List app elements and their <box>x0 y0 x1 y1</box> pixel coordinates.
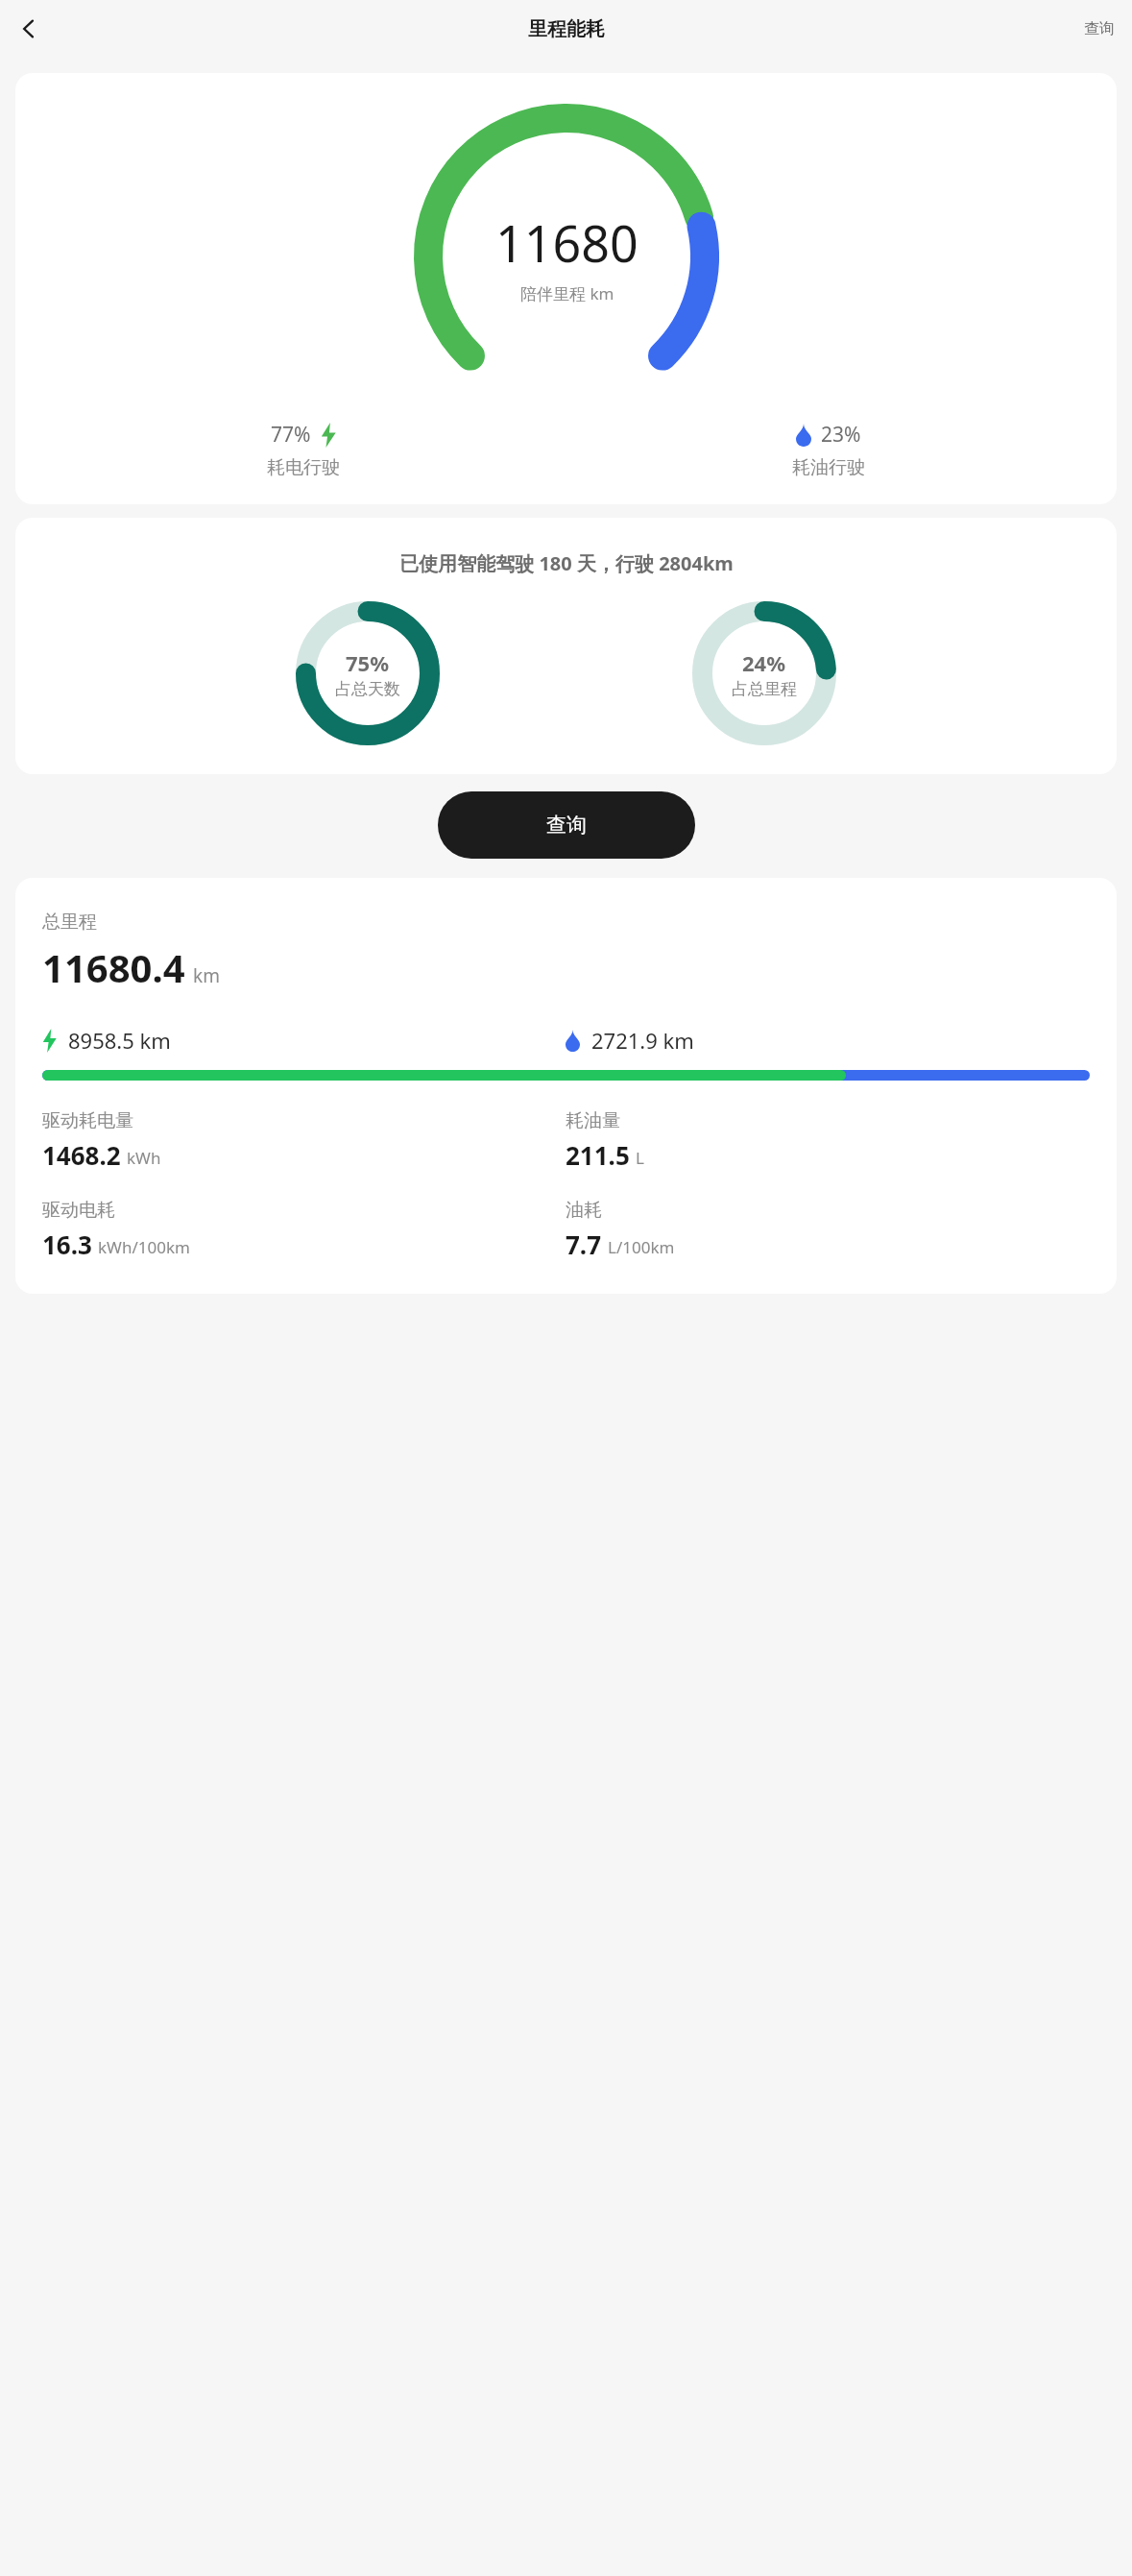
staticText: 查询 <box>546 813 587 838</box>
staticText: 75% <box>346 648 390 677</box>
staticText: 里程能耗 <box>528 17 605 41</box>
staticText: 2721.9 km <box>591 1026 694 1055</box>
staticText: 16.3 <box>42 1227 92 1261</box>
staticText: 11680.4 <box>42 941 185 993</box>
staticText: L/100km <box>608 1236 675 1258</box>
staticText: 总里程 <box>42 911 97 934</box>
staticText: 7.7 <box>566 1227 602 1261</box>
staticText: 驱动电耗 <box>42 1199 115 1222</box>
staticText: 11680 <box>495 208 638 277</box>
staticText: 耗油行驶 <box>792 456 865 479</box>
staticText: 陪伴里程 km <box>520 282 614 304</box>
staticText: 8958.5 km <box>68 1026 171 1055</box>
staticText: 占总里程 <box>732 679 797 699</box>
staticText: kWh <box>127 1147 161 1169</box>
staticText: 24% <box>742 648 786 677</box>
staticText: 1468.2 <box>42 1138 121 1172</box>
staticText: 油耗 <box>566 1199 602 1222</box>
staticText: 77% <box>271 421 311 449</box>
button[interactable]: 查询 <box>1067 10 1132 48</box>
staticText: 查询 <box>1084 19 1115 38</box>
staticText: 已使用智能驾驶 180 天，行驶 2804km <box>399 550 734 576</box>
staticText: km <box>193 963 220 988</box>
staticText: 211.5 <box>566 1138 630 1172</box>
staticText: 驱动耗电量 <box>42 1109 133 1132</box>
button[interactable]: 查询 <box>438 791 695 859</box>
staticText: 耗油量 <box>566 1109 620 1132</box>
staticText: L <box>636 1147 644 1169</box>
staticText: 耗电行驶 <box>267 456 340 479</box>
staticText: 23% <box>821 421 861 449</box>
staticText: 占总天数 <box>335 679 400 699</box>
staticText: kWh/100km <box>98 1236 190 1258</box>
button[interactable]: Back <box>6 6 52 52</box>
